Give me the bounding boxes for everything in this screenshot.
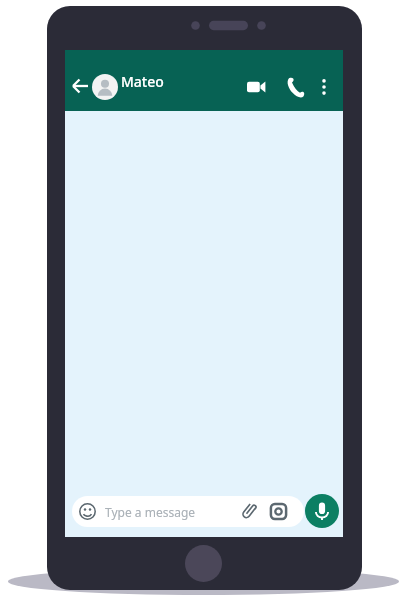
button[interactable]: More options: [311, 74, 337, 100]
staticText: Type a message: [105, 504, 196, 520]
button[interactable]: Home: [185, 545, 222, 582]
button[interactable]: Record voice message: [305, 494, 339, 528]
staticText: Mateo: [121, 72, 164, 91]
button[interactable]: Video call: [243, 74, 269, 100]
button[interactable]: Mateo: [121, 69, 193, 93]
button[interactable]: Contact photo: [92, 74, 118, 100]
button[interactable]: Emoji: [72, 496, 304, 527]
button[interactable]: Voice call: [283, 74, 309, 100]
button[interactable]: Emoji: [79, 503, 96, 520]
button[interactable]: Back: [68, 73, 94, 99]
button[interactable]: Camera: [269, 502, 288, 521]
button[interactable]: Attach file: [239, 502, 258, 521]
